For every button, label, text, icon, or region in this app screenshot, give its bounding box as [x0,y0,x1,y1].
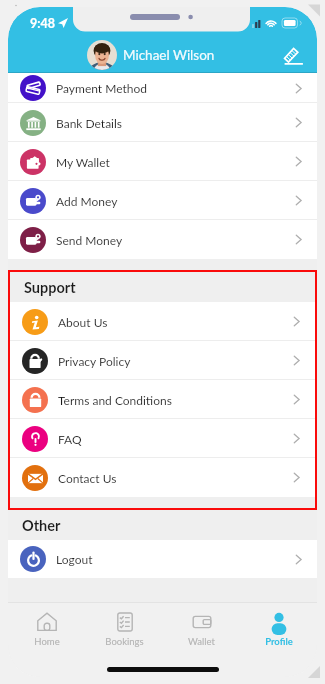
button[interactable]: About Us [10,302,315,341]
button[interactable]: Profile [240,603,317,655]
button[interactable]: Wallet [163,603,240,655]
button[interactable]: Logout [8,540,317,578]
button[interactable]: FAQ [10,419,315,458]
staticText: Profile [265,636,293,647]
staticText: Contact Us [58,471,117,485]
button[interactable]: Contact Us [10,458,315,497]
staticText: About Us [58,315,108,329]
button[interactable]: My Wallet [8,142,317,181]
button[interactable]: Add Money [8,181,317,220]
staticText: Payment Method [56,81,147,95]
button[interactable]: Home [8,603,86,655]
button[interactable]: Bank Details [8,103,317,142]
staticText: Privacy Policy [58,354,131,368]
staticText: Logout [56,552,93,566]
staticText: Other [22,517,61,534]
button[interactable]: Michael Wilson [87,40,215,70]
staticText: Michael Wilson [123,47,215,63]
staticText: Home [34,636,60,647]
button[interactable]: Terms and Conditions [10,380,315,419]
button[interactable]: Send Money [8,220,317,259]
staticText: My Wallet [56,155,110,169]
staticText: Terms and Conditions [58,393,173,407]
staticText: 9:48 [30,16,55,31]
button[interactable]: Bookings [86,603,163,655]
staticText: Wallet [188,636,215,647]
staticText: Add Money [56,194,118,208]
button[interactable]: Edit profile [276,42,310,72]
staticText: Bank Details [56,116,123,130]
staticText: Bookings [105,636,144,647]
staticText: Support [24,279,76,296]
staticText: FAQ [58,432,82,446]
staticText: Send Money [56,233,123,247]
button[interactable]: Payment Method [8,73,317,103]
button[interactable]: Privacy Policy [10,341,315,380]
